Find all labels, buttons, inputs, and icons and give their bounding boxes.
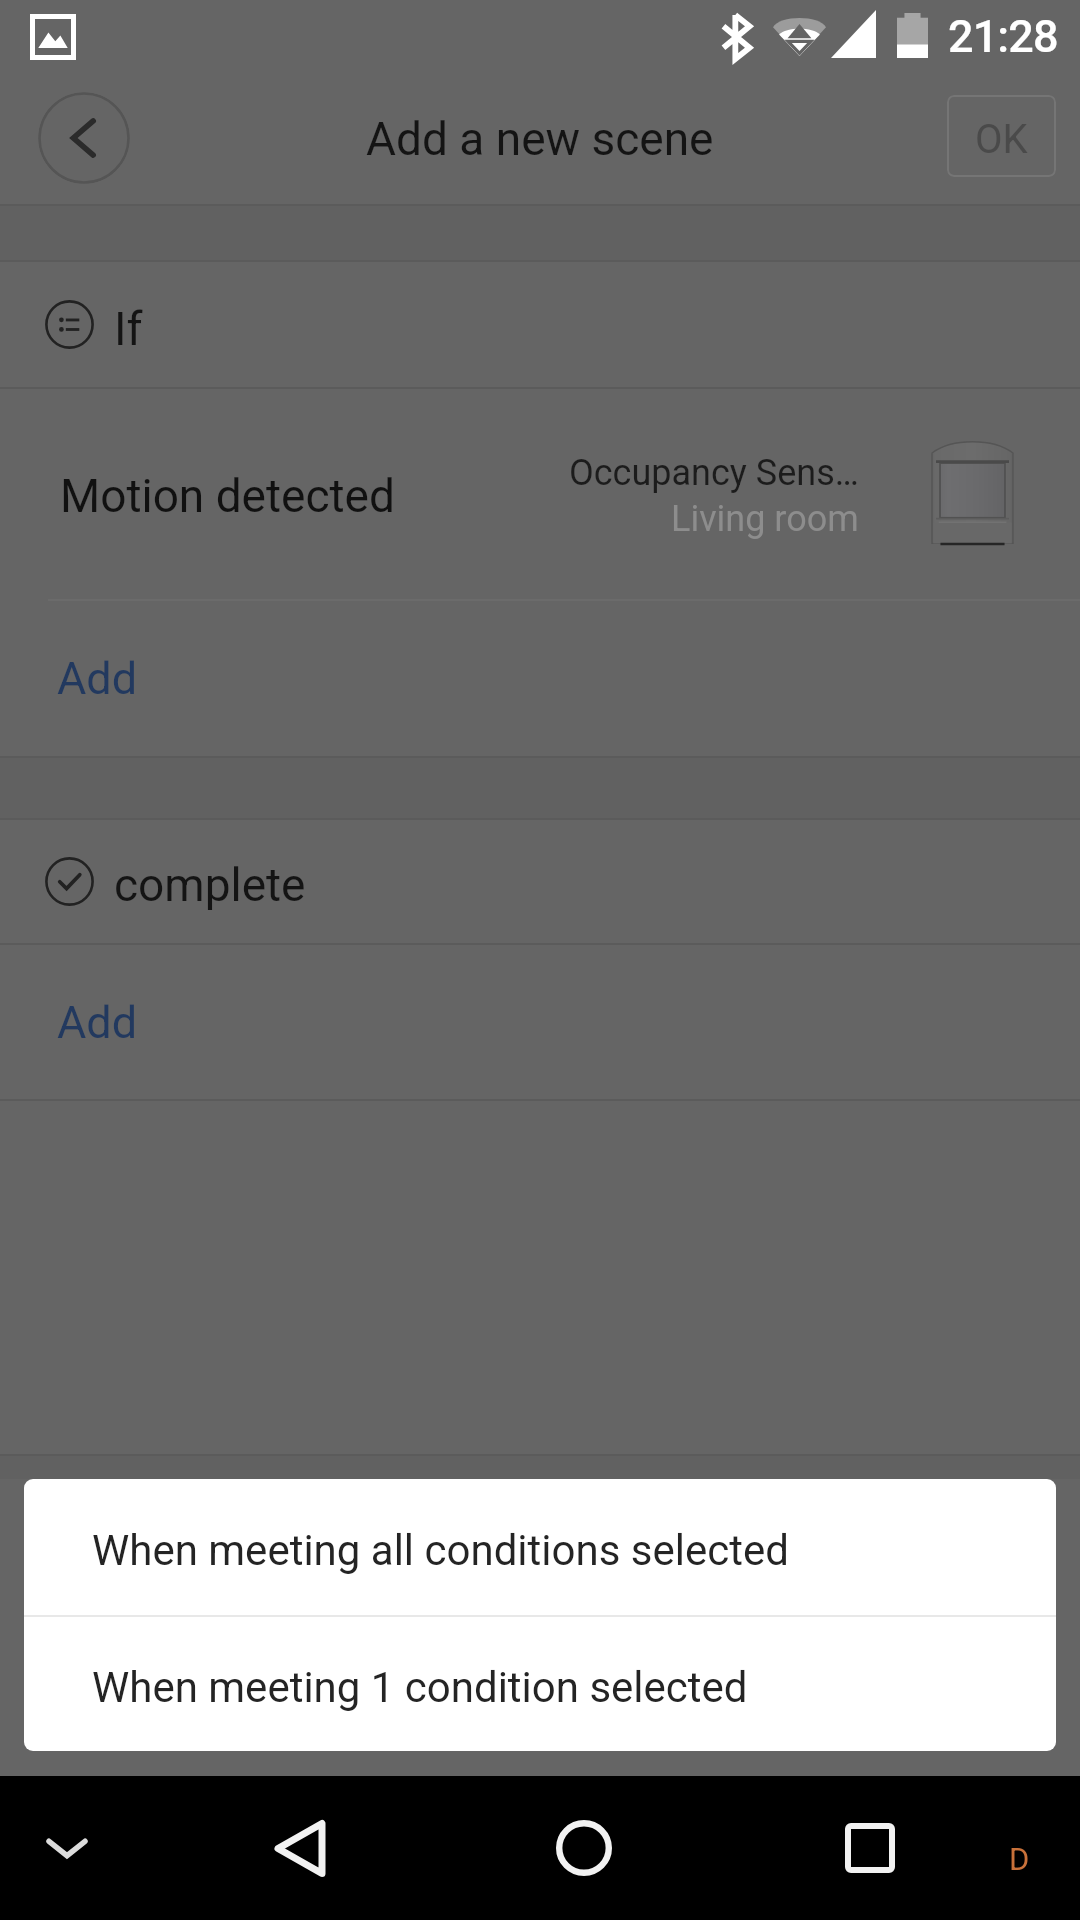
button[interactable]: Back — [38, 92, 130, 184]
staticText: 21:28 — [948, 10, 1058, 63]
staticText: complete — [114, 858, 306, 912]
button[interactable]: complete — [0, 820, 1080, 943]
staticText: Add a new scene — [366, 112, 714, 166]
staticText: Add — [57, 652, 138, 705]
staticText: If — [114, 302, 143, 356]
button[interactable]: When meeting all conditions selected — [24, 1479, 1056, 1615]
staticText: When meeting 1 condition selected — [92, 1663, 748, 1712]
button[interactable]: Add — [0, 945, 1080, 1099]
button[interactable]: When meeting 1 condition selected — [24, 1617, 1056, 1751]
staticText: D — [1009, 1841, 1030, 1877]
staticText: Motion detected — [60, 469, 395, 523]
button[interactable]: Hide keyboard — [17, 1798, 117, 1898]
staticText: Add — [57, 996, 138, 1049]
staticText: When meeting all conditions selected — [92, 1526, 789, 1575]
button[interactable]: Add — [0, 601, 1080, 756]
staticText: OK — [975, 116, 1028, 163]
button[interactable]: Home — [529, 1793, 639, 1903]
button[interactable]: Motion detected — [0, 389, 1080, 599]
button[interactable]: If — [0, 262, 1080, 387]
button[interactable]: Back — [245, 1793, 355, 1903]
staticText: Living room — [671, 498, 859, 540]
button[interactable]: OK — [947, 95, 1056, 177]
staticText: Occupancy Sens… — [569, 452, 859, 494]
button[interactable]: Recent apps — [815, 1793, 925, 1903]
